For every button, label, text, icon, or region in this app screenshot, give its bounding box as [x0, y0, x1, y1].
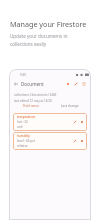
button[interactable]: Delete entry: [79, 119, 85, 125]
staticText: Manage your Firestore: [10, 19, 87, 29]
staticText: hot : 32: [17, 120, 28, 124]
staticText: collections / documents / b82f: [14, 93, 57, 97]
button[interactable]: Back: [12, 80, 20, 88]
button[interactable]: Edit entry: [72, 138, 78, 144]
staticText: unit: [17, 125, 23, 129]
button[interactable]: Add document: [65, 81, 71, 87]
staticText: level : 64 pct: [17, 139, 35, 143]
button[interactable]: humidity: [13, 132, 87, 150]
staticText: Field name: [23, 104, 39, 108]
staticText: last edited 12 may at 14:20: [14, 99, 52, 103]
button[interactable]: Delete document: [81, 81, 87, 87]
staticText: 9:30: [20, 73, 26, 77]
staticText: relative: [17, 144, 28, 148]
button[interactable]: temperature: [13, 113, 87, 131]
staticText: temperature: [17, 115, 36, 119]
button[interactable]: Edit entry: [72, 119, 78, 125]
staticText: Document: [21, 81, 44, 87]
button[interactable]: Delete entry: [79, 138, 85, 144]
staticText: Last change: [61, 104, 79, 108]
button[interactable]: Edit document: [73, 81, 79, 87]
staticText: Update your documents in collections eas…: [10, 33, 68, 48]
staticText: humidity: [17, 134, 30, 138]
